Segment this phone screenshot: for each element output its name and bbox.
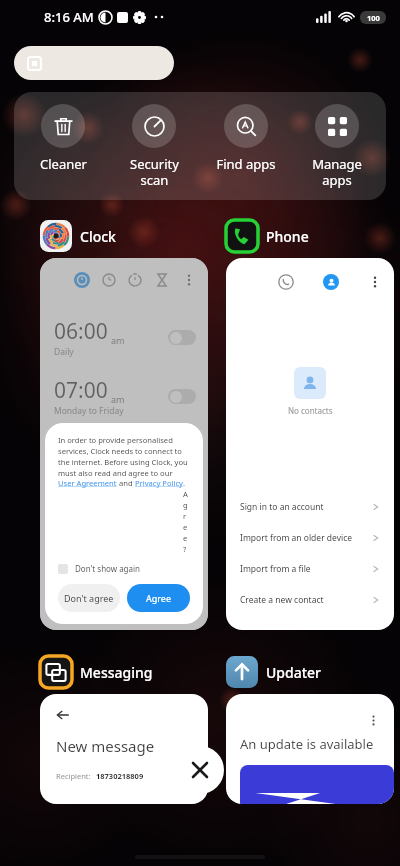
- staticText: In order to provide personalised service…: [58, 435, 190, 478]
- button[interactable]: 07:00: [54, 367, 196, 426]
- staticText: User Agreement: [58, 478, 117, 488]
- staticText: am: [111, 393, 125, 405]
- staticText: Updater: [266, 663, 322, 682]
- staticText: Monday to Friday: [54, 405, 124, 417]
- staticText: am: [111, 334, 125, 346]
- staticText: Create a new contact: [240, 594, 324, 606]
- button[interactable]: Cleaner: [20, 104, 106, 173]
- staticText: 18730218809: [96, 771, 144, 781]
- staticText: Find apps: [216, 155, 276, 173]
- button[interactable]: [168, 448, 196, 463]
- staticText: Manage apps: [312, 155, 362, 188]
- staticText: Clock: [80, 227, 116, 246]
- staticText: . Agree?: [183, 478, 190, 554]
- button[interactable]: Messaging: [40, 656, 153, 688]
- button[interactable]: Import from a file: [240, 556, 380, 582]
- button[interactable]: Don't show again: [58, 563, 141, 574]
- button[interactable]: Agree: [127, 584, 190, 612]
- staticText: Recipient:: [56, 771, 91, 781]
- button[interactable]: 08:00: [54, 426, 196, 485]
- staticText: am: [111, 452, 125, 464]
- button[interactable]: [168, 330, 196, 345]
- button[interactable]: Updater: [226, 656, 322, 688]
- staticText: Import from a file: [240, 563, 311, 575]
- button[interactable]: Import from an older device: [240, 525, 380, 551]
- button[interactable]: Manage apps: [294, 104, 380, 188]
- button[interactable]: Phone: [226, 220, 309, 252]
- staticText: Don't agree: [64, 592, 114, 604]
- staticText: 08:00: [54, 435, 108, 464]
- button[interactable]: Close: [176, 746, 224, 794]
- staticText: and: [117, 478, 135, 488]
- staticText: Messaging: [80, 663, 153, 682]
- staticText: 8:16 AM: [44, 8, 94, 26]
- button[interactable]: Clock: [40, 220, 116, 252]
- button[interactable]: Security scan: [111, 104, 197, 188]
- button[interactable]: [168, 389, 196, 404]
- button[interactable]: Don't agree: [58, 584, 120, 612]
- staticText: Don't show again: [75, 563, 141, 574]
- staticText: New message: [56, 736, 155, 756]
- staticText: Cleaner: [40, 155, 87, 173]
- staticText: Privacy Policy: [135, 478, 183, 488]
- staticText: No contacts: [288, 405, 333, 416]
- staticText: 06:00: [54, 317, 108, 346]
- staticText: Security scan: [130, 155, 179, 188]
- button[interactable]: Create a new contact: [240, 587, 380, 613]
- staticText: Agree: [146, 592, 171, 604]
- staticText: Import from an older device: [240, 532, 353, 544]
- staticText: 100: [367, 13, 380, 23]
- staticText: Phone: [266, 227, 309, 246]
- staticText: Sign in to an account: [240, 501, 324, 513]
- staticText: 07:00: [54, 376, 108, 405]
- staticText: An update is available: [240, 735, 374, 753]
- button[interactable]: Sign in to an account: [240, 494, 380, 520]
- button[interactable]: Search: [14, 46, 174, 80]
- button[interactable]: 06:00: [54, 308, 196, 367]
- staticText: Daily: [54, 346, 74, 358]
- button[interactable]: Find apps: [203, 104, 289, 173]
- staticText: Sat Sun: [54, 464, 84, 476]
